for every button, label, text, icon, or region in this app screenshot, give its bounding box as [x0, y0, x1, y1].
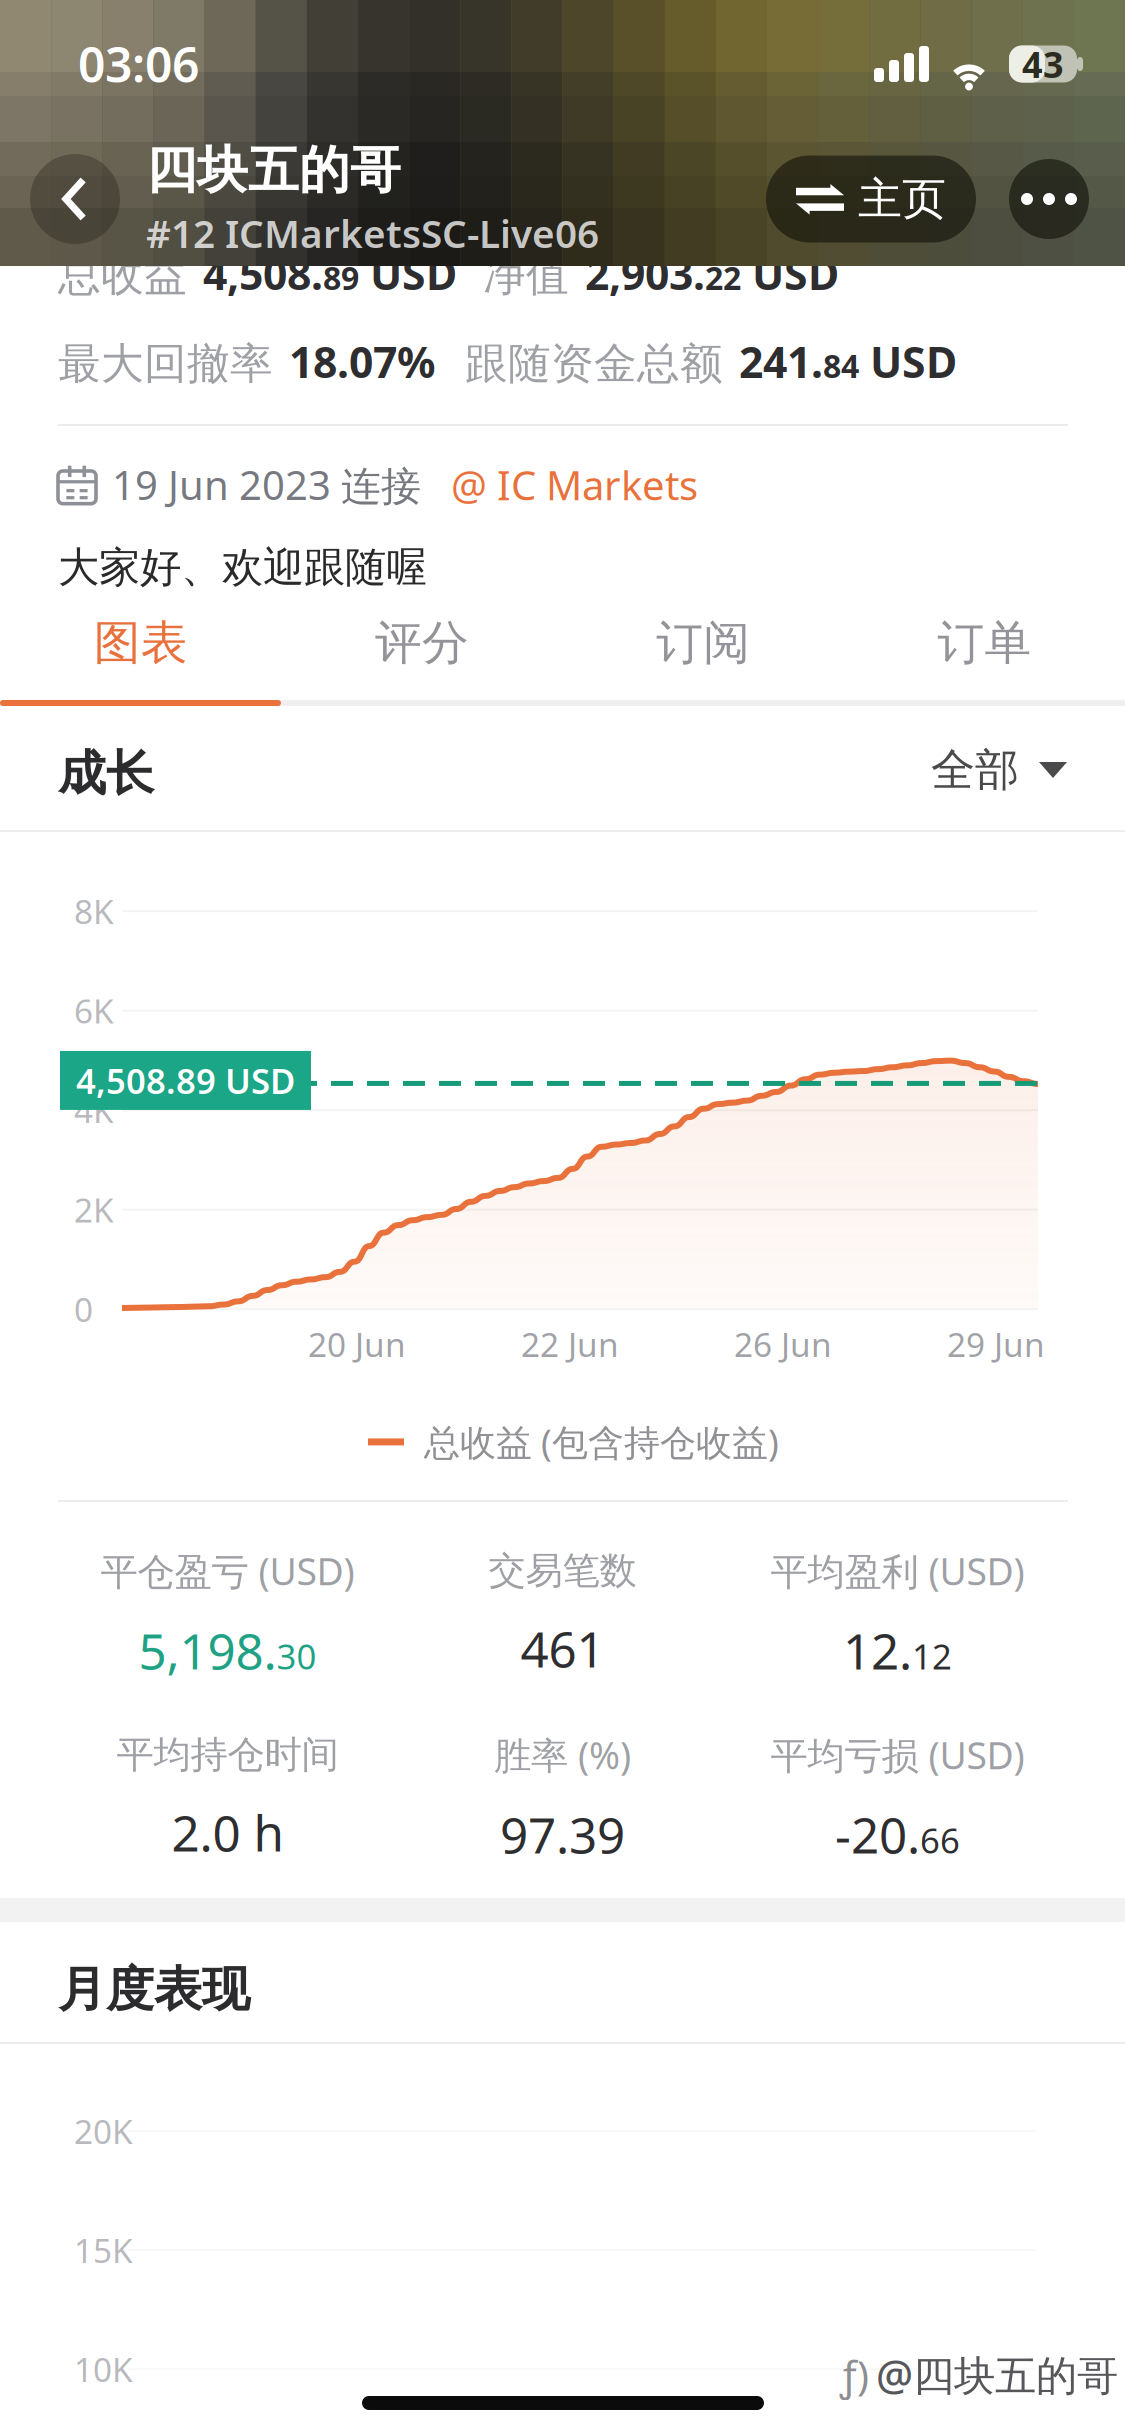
staticText: 30 — [276, 1633, 316, 1679]
button[interactable]: 订单 — [844, 598, 1125, 688]
staticText: 18.07% — [289, 333, 435, 390]
staticText: 0 — [74, 1287, 93, 1331]
staticText: 6K — [74, 988, 114, 1033]
staticText: 89 — [323, 256, 359, 299]
staticText: 成长 — [58, 744, 154, 803]
button[interactable]: 评分 — [281, 598, 562, 688]
staticText: 全部 — [931, 743, 1019, 797]
staticText: USD — [359, 245, 457, 302]
staticText: 评分 — [375, 614, 469, 672]
staticText: 订单 — [937, 614, 1031, 672]
staticText: 97.39 — [500, 1802, 625, 1867]
staticText: 12 — [912, 1633, 952, 1679]
staticText: 图表 — [94, 614, 188, 672]
staticText: 总收益 (包含持仓收益) — [424, 1418, 779, 1466]
staticText: 跟随资金总额 — [465, 337, 723, 390]
staticText: 2,903. — [585, 245, 705, 302]
staticText: 订阅 — [656, 614, 750, 672]
button[interactable]: 订阅 — [562, 598, 844, 688]
staticText: #12 ICMarketsSC-Live06 — [146, 207, 599, 259]
staticText: 4K — [74, 1088, 114, 1132]
staticText: 20 Jun — [308, 1322, 406, 1366]
staticText: USD — [859, 333, 957, 390]
staticText: -20. — [835, 1802, 920, 1867]
staticText: 交易笔数 — [488, 1548, 636, 1594]
staticText: ƒ) — [840, 2348, 869, 2401]
staticText: 43 — [1022, 40, 1064, 88]
staticText: 平仓盈亏 (USD) — [100, 1546, 354, 1596]
staticText: 平均盈利 (USD) — [770, 1546, 1024, 1596]
staticText: 66 — [920, 1817, 960, 1863]
staticText: 241. — [739, 333, 823, 390]
button[interactable]: 图表 — [0, 598, 281, 688]
staticText: 2K — [74, 1187, 114, 1232]
staticText: 2.0 h — [171, 1800, 283, 1865]
staticText: 平均亏损 (USD) — [770, 1730, 1024, 1780]
staticText: 净值 — [483, 249, 569, 302]
staticText: 四块五的哥 — [146, 139, 401, 201]
staticText: 5,198. — [138, 1618, 276, 1683]
button[interactable]: More options — [1009, 159, 1089, 239]
staticText: 8K — [74, 889, 114, 933]
staticText: 29 Jun — [947, 1322, 1045, 1366]
staticText: 大家好、欢迎跟随喔 — [58, 542, 427, 593]
staticText: 20K — [74, 2109, 133, 2153]
staticText: 10K — [74, 2347, 133, 2391]
staticText: 461 — [520, 1616, 604, 1681]
staticText: 22 Jun — [521, 1322, 619, 1366]
staticText: 22 — [705, 256, 741, 299]
staticText: 4,508. — [203, 245, 323, 302]
staticText: 03:06 — [78, 32, 199, 96]
staticText: 总收益 — [58, 249, 187, 302]
staticText: 最大回撤率 — [58, 337, 273, 390]
staticText: 主页 — [858, 172, 946, 226]
staticText: 19 Jun 2023 连接 — [112, 458, 421, 511]
button[interactable]: 全部 — [931, 740, 1067, 800]
staticText: 胜率 (%) — [494, 1730, 631, 1780]
staticText: 4,508.89 USD — [76, 1057, 295, 1103]
staticText: 12. — [843, 1618, 912, 1683]
button[interactable]: 主页 — [766, 155, 976, 242]
staticText: USD — [741, 245, 839, 302]
button[interactable]: Back — [30, 154, 120, 244]
staticText: 15K — [74, 2228, 133, 2272]
staticText: 26 Jun — [734, 1322, 832, 1366]
staticText: 月度表现 — [58, 1960, 250, 2019]
staticText: @ IC Markets — [451, 458, 698, 511]
staticText: 平均持仓时间 — [116, 1732, 338, 1778]
staticText: 84 — [823, 344, 859, 387]
staticText: @四块五的哥 — [876, 2347, 1118, 2402]
